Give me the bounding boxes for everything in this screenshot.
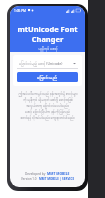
button[interactable]: MMT MOBILE [47, 171, 70, 176]
staticText: ဖောင့် ပြောင်းပြီးပါက ဖုန်းကို ပြန်လည် [25, 109, 70, 114]
staticText: ယူနီကုဒ် ဖောင့် [38, 46, 58, 52]
button[interactable]: MMT MOBILE | SERVICE [39, 177, 75, 181]
staticText: အလွယ်တကူ ပြောင်းလဲပေးပါသည်။ [26, 103, 69, 108]
staticText: MMT MOBILE [47, 171, 70, 176]
staticText: Developed by [25, 172, 47, 176]
staticText: 1:05 PM [14, 9, 26, 13]
staticText: စတင်ရန် လိုအပ်ပါသည်။ ကျေးဇူးတင်ပါသည်။ [20, 115, 75, 120]
button[interactable]: ပြောင်းမည် [17, 72, 78, 82]
staticText: mtUnicode Font Changer [10, 24, 85, 44]
staticText: ကို ယူနီကုဒ် သို့မဟုတ် ဇော်ဂျီ ဖောင့်အဖြ… [23, 97, 73, 102]
staticText: MMT MOBILE | SERVICE [39, 177, 75, 181]
staticText: Version 1.0 [21, 177, 39, 181]
staticText: ပြောင်းလဲမည့် ဖောင့် (Unicode) [19, 61, 63, 67]
staticText: ပြောင်းမည် [37, 73, 58, 82]
staticText: ဤအပ်ပလီကေးရှင်းသည် ဖုန်းအတွင်းရှိ စာလုံး… [18, 91, 78, 96]
button[interactable]: ပြောင်းလဲမည့် ဖောင့် (Unicode) [17, 59, 78, 68]
